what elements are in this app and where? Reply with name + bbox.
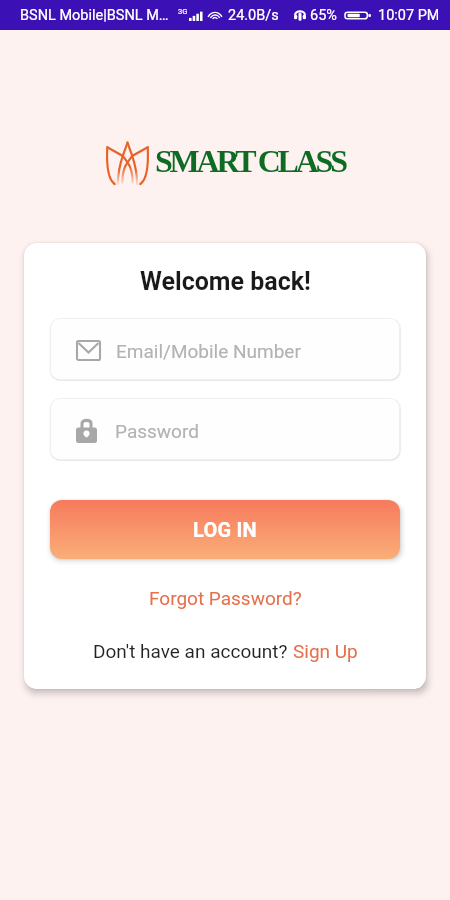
- staticText: Forgot Password?: [149, 587, 302, 609]
- staticText: Email/Mobile Number: [116, 340, 301, 362]
- other: Password: [76, 418, 97, 443]
- staticText: 10:07 PM: [378, 7, 438, 24]
- staticText: SMART CLASS: [155, 143, 345, 178]
- staticText: 3G: [178, 7, 188, 16]
- staticText: Password: [115, 420, 199, 442]
- other: Email: [76, 340, 101, 361]
- staticText: Welcome back!: [140, 267, 311, 296]
- button[interactable]: Forgot Password?: [143, 584, 308, 612]
- button[interactable]: Password: [50, 398, 400, 460]
- staticText: Don't have an account?: [93, 640, 288, 662]
- staticText: Sign Up: [293, 640, 358, 662]
- staticText: 65%: [310, 7, 337, 24]
- button[interactable]: Email: [50, 318, 400, 380]
- staticText: LOG IN: [193, 518, 257, 541]
- button[interactable]: LOG IN: [50, 500, 400, 559]
- staticText: 24.0B/s: [228, 7, 279, 24]
- button[interactable]: Sign Up: [293, 640, 358, 662]
- staticText: BSNL Mobile|BSNL M…: [20, 7, 169, 24]
